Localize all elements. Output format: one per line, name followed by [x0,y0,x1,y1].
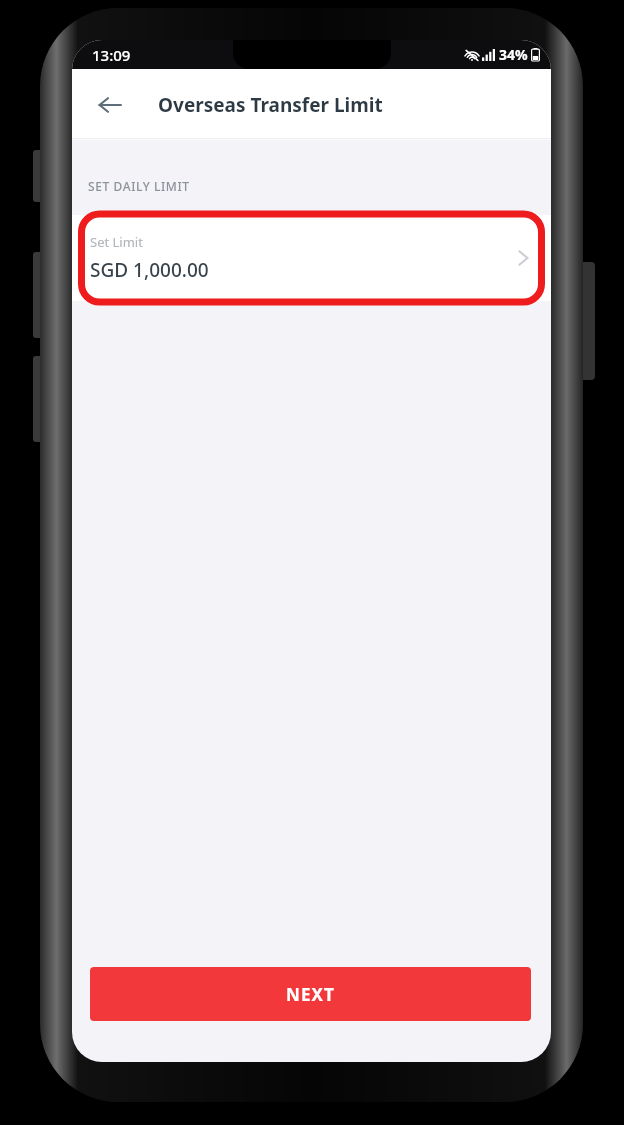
staticText: Set Limit [90,233,143,251]
staticText: 13:09 [92,45,131,65]
staticText: 34% [499,45,528,64]
staticText: Overseas Transfer Limit [158,92,383,118]
button[interactable]: Set Limit [72,215,551,301]
button[interactable]: Back [86,81,134,129]
staticText: SET DAILY LIMIT [88,178,190,194]
staticText: SGD 1,000.00 [90,257,209,283]
button[interactable]: NEXT [90,967,531,1021]
staticText: NEXT [286,983,335,1006]
